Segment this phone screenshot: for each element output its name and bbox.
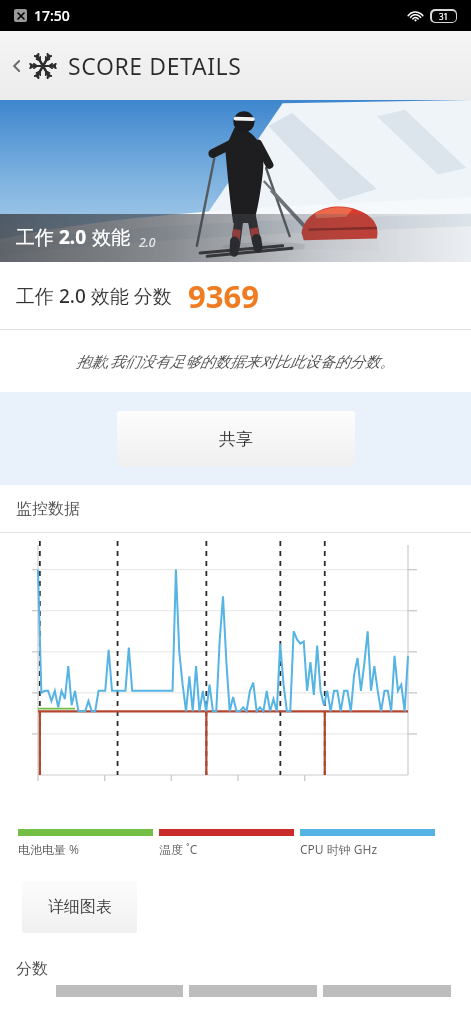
staticText: 分数 [16,959,48,979]
staticText: 17:50 [34,6,70,25]
button[interactable]: Back [0,31,471,100]
button[interactable]: 共享 [117,411,355,467]
staticText: 工作 [16,224,59,250]
staticText: 详细图表 [48,897,112,917]
other: Back [8,57,26,75]
staticText: SCORE DETAILS [68,50,242,81]
staticText: 31 [439,11,449,22]
staticText: 监控数据 [16,499,80,519]
staticText: 抱歉,我们没有足够的数据来对比此设备的分数。 [76,351,395,371]
staticText: 电池电量 % [18,841,80,857]
staticText: 2.0 [59,224,87,250]
staticText: 共享 [219,429,253,450]
staticText: 2.0 [139,234,156,250]
staticText: 效能 [87,224,130,250]
staticText: 9369 [188,275,259,317]
staticText: 温度 ˚C [159,841,198,857]
button[interactable]: 详细图表 [22,881,137,933]
staticText: CPU 时钟 GHz [300,841,378,857]
staticText: 工作 2.0 效能 分数 [16,283,172,309]
